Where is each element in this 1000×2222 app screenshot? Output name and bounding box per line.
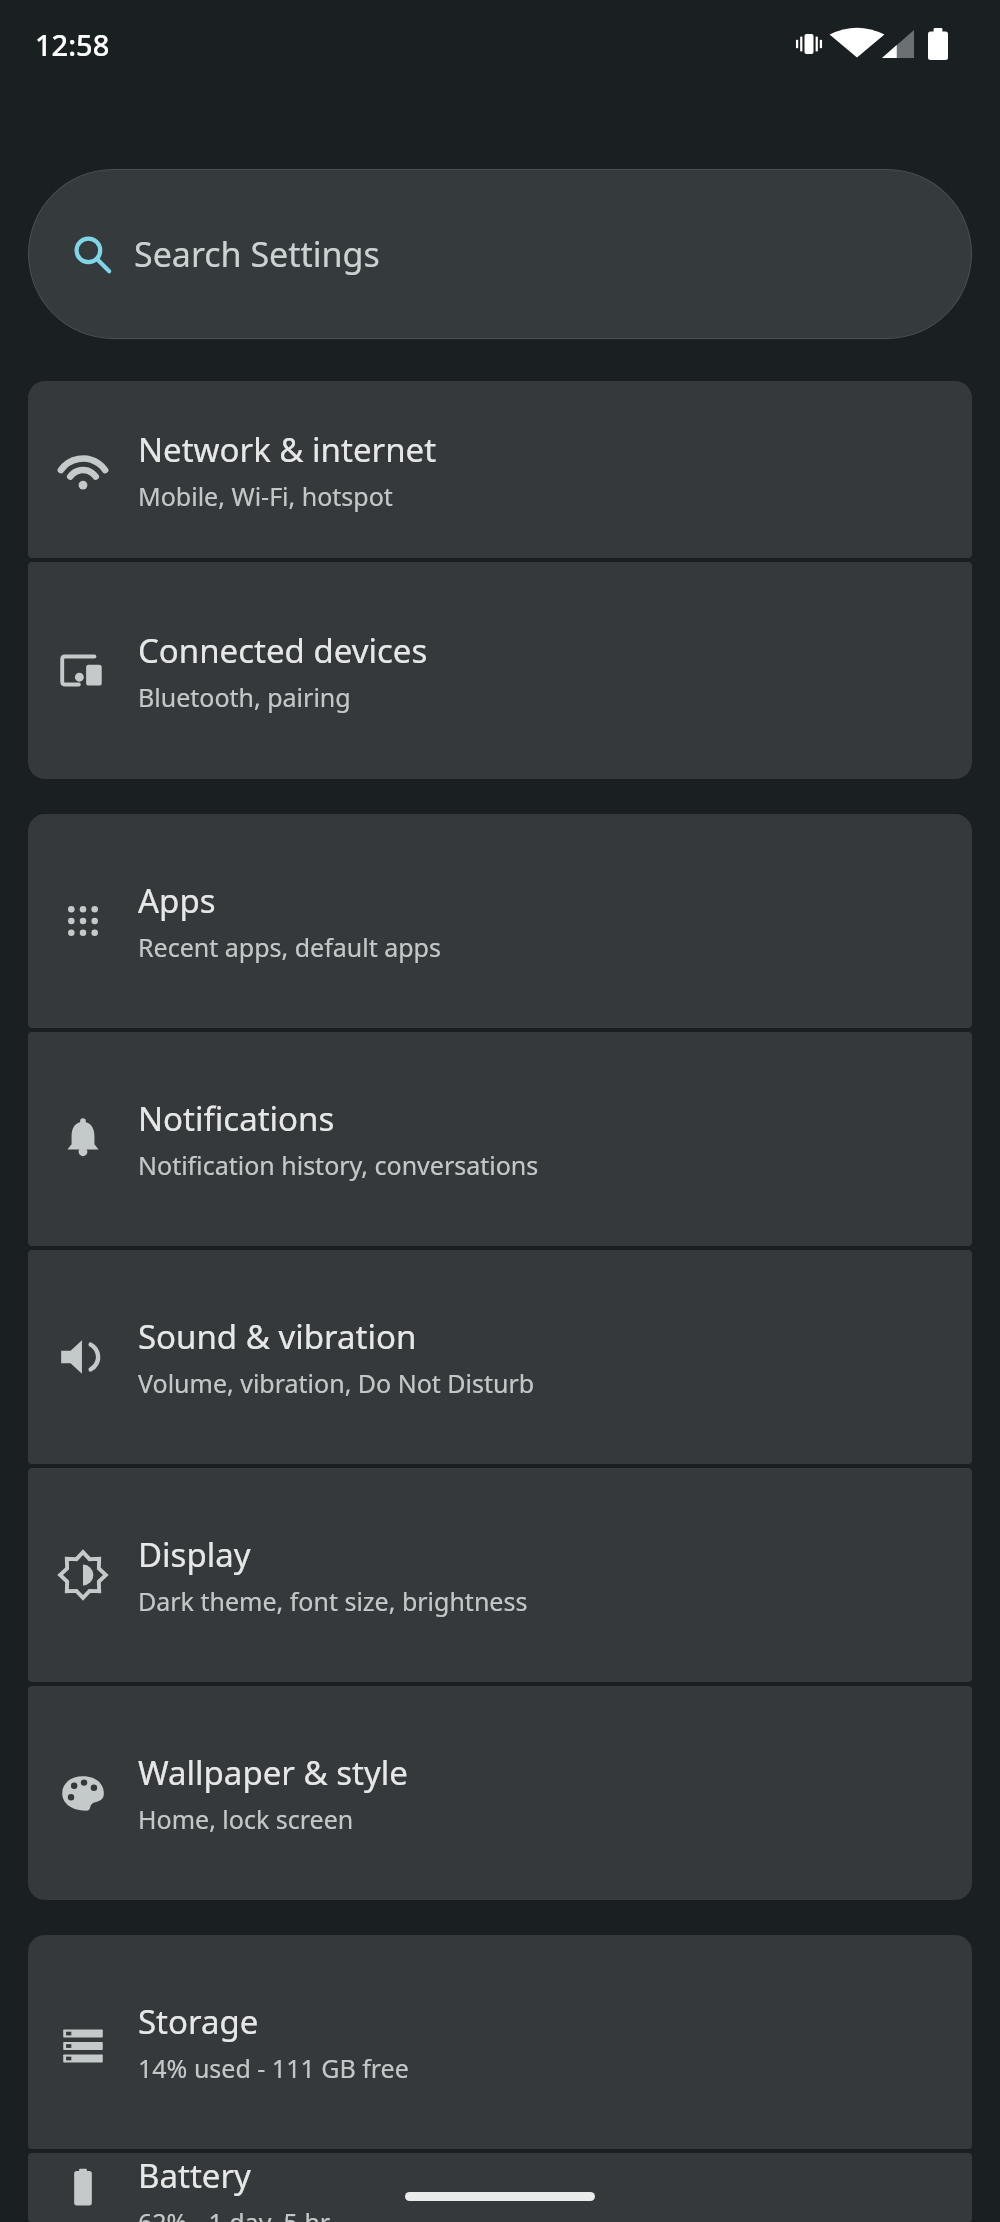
staticText: Storage <box>138 1999 259 2044</box>
staticText: 62% - 1 day, 5 hr <box>138 2205 331 2222</box>
staticText: Recent apps, default apps <box>138 930 441 964</box>
staticText: Notification history, conversations <box>138 1148 539 1182</box>
button[interactable]: Sound & vibration <box>28 1250 972 1464</box>
button[interactable]: Connected devices <box>28 562 972 779</box>
button[interactable]: Storage <box>28 1935 972 2149</box>
button[interactable]: Display <box>28 1468 972 1682</box>
button[interactable]: Network & internet <box>28 381 972 558</box>
button[interactable]: Wallpaper & style <box>28 1686 972 1900</box>
staticText: Sound & vibration <box>138 1314 417 1359</box>
staticText: Bluetooth, pairing <box>138 680 351 714</box>
staticText: Network & internet <box>138 427 437 472</box>
button[interactable]: Search Settings <box>28 169 972 339</box>
staticText: Wallpaper & style <box>138 1750 408 1795</box>
button[interactable]: Notifications <box>28 1032 972 1246</box>
staticText: Volume, vibration, Do Not Disturb <box>138 1366 535 1400</box>
staticText: Home, lock screen <box>138 1802 354 1836</box>
button[interactable]: Battery <box>28 2153 972 2222</box>
staticText: 12:58 <box>35 25 110 64</box>
staticText: Display <box>138 1532 251 1577</box>
staticText: Dark theme, font size, brightness <box>138 1584 528 1618</box>
staticText: Connected devices <box>138 628 428 673</box>
staticText: Mobile, Wi-Fi, hotspot <box>138 479 393 513</box>
staticText: Search Settings <box>134 231 380 277</box>
button[interactable]: Apps <box>28 814 972 1028</box>
staticText: Notifications <box>138 1096 335 1141</box>
staticText: 14% used - 111 GB free <box>138 2051 409 2085</box>
staticText: Battery <box>138 2153 251 2198</box>
staticText: Apps <box>138 878 216 923</box>
